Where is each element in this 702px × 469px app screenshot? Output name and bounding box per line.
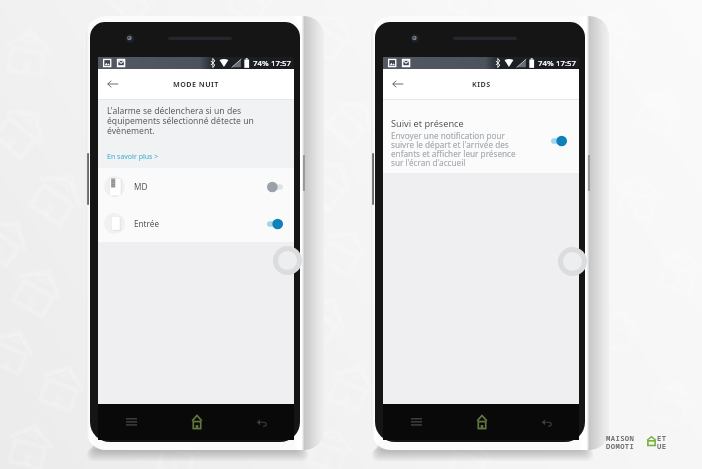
button[interactable]: En savoir plus > xyxy=(107,152,159,162)
button[interactable]: Accueil xyxy=(449,404,514,440)
staticText: 17:57 xyxy=(556,58,576,69)
staticText: MAISON xyxy=(606,433,635,443)
button[interactable]: Retour xyxy=(514,404,579,440)
staticText: En savoir plus > xyxy=(107,152,159,162)
button[interactable]: Action xyxy=(273,246,302,275)
button[interactable]: Applications récentes xyxy=(383,404,449,440)
button[interactable]: Retour xyxy=(229,404,294,440)
staticText: KIDS xyxy=(472,79,491,89)
button[interactable]: Activé xyxy=(267,218,283,230)
staticText: ET xyxy=(657,433,667,443)
staticText: MODE NUIT xyxy=(173,79,219,89)
button[interactable]: Retour xyxy=(105,76,121,92)
staticText: 74% xyxy=(253,58,269,69)
staticText: 17:57 xyxy=(271,58,291,69)
button[interactable]: Activé xyxy=(551,135,567,147)
button[interactable]: Action xyxy=(558,247,587,276)
button[interactable]: Suivi et présence xyxy=(383,100,579,173)
staticText: DOMOTI xyxy=(606,441,635,451)
button[interactable]: Désactivé xyxy=(267,181,283,193)
staticText: 74% xyxy=(538,58,554,69)
staticText: Suivi et présence xyxy=(391,117,464,130)
staticText: UE xyxy=(657,441,667,451)
button[interactable]: Retour xyxy=(390,76,406,92)
button[interactable]: Entrée xyxy=(98,205,294,242)
staticText: Envoyer une notification pour suivre le … xyxy=(391,130,516,168)
button[interactable]: MD xyxy=(98,168,294,205)
button[interactable]: Accueil xyxy=(164,404,229,440)
staticText: L'alarme se déclenchera si un des équipe… xyxy=(107,105,254,137)
staticText: Entrée xyxy=(134,218,160,229)
button[interactable]: Applications récentes xyxy=(98,404,164,440)
staticText: MD xyxy=(134,181,148,192)
